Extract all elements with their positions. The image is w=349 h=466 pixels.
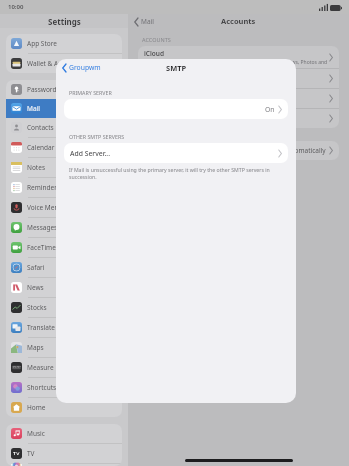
staticText: OTHER SMTP SERVERS <box>69 133 125 140</box>
staticText: Notes <box>27 163 45 172</box>
staticText: Calendar <box>27 143 55 152</box>
staticText: Accounts <box>221 16 256 26</box>
button[interactable] <box>138 109 339 128</box>
button[interactable]: Music <box>6 424 122 443</box>
button[interactable]: Add Server... <box>64 143 288 163</box>
button[interactable]: Automatically <box>138 141 339 160</box>
staticText: Safari <box>27 263 45 272</box>
staticText: Automatically <box>284 146 326 155</box>
button[interactable]: Calendar <box>6 138 122 157</box>
button[interactable]: Translate <box>6 318 122 337</box>
staticText: Mail <box>141 17 154 26</box>
staticText: Voice Memos <box>27 203 68 212</box>
button[interactable]: News <box>6 278 122 297</box>
button[interactable]: On <box>64 99 288 119</box>
button[interactable]: Mail <box>134 17 154 26</box>
button[interactable]: Voice Memos <box>6 198 122 217</box>
button[interactable]: TV <box>6 444 122 463</box>
button[interactable]: Stocks <box>6 298 122 317</box>
button[interactable]: Notes <box>6 158 122 177</box>
staticText: On <box>265 105 275 114</box>
staticText: Shortcuts <box>27 383 57 392</box>
staticText: Home <box>27 403 46 412</box>
button[interactable] <box>138 69 339 88</box>
staticText: Passwords <box>27 85 60 94</box>
button[interactable]: FaceTime <box>6 238 122 257</box>
staticText: Groupwm <box>69 63 101 72</box>
staticText: iCloud Drive, Contacts, Calendars, Safar… <box>144 59 329 66</box>
button[interactable]: Wallet & Apple Pay <box>6 54 122 73</box>
button[interactable]: Safari <box>6 258 122 277</box>
staticText: iCloud <box>144 49 165 58</box>
button[interactable]: App Store <box>6 34 122 53</box>
staticText: News <box>27 283 44 292</box>
button[interactable]: Mail <box>6 99 122 118</box>
button[interactable]: Home <box>6 398 122 417</box>
staticText: Translate <box>27 323 55 332</box>
staticText: Add Server... <box>70 149 110 158</box>
staticText: Messages <box>27 223 58 232</box>
staticText: TV <box>27 449 35 458</box>
staticText: Contacts <box>27 123 54 132</box>
button[interactable]: Passwords <box>6 80 122 99</box>
staticText: PRIMARY SERVER <box>69 89 112 96</box>
staticText: If Mail is unsuccessful using the primar… <box>69 166 283 180</box>
button[interactable]: Measure <box>6 358 122 377</box>
staticText: App Store <box>27 39 57 48</box>
staticText: Reminders <box>27 183 60 192</box>
staticText: SMTP <box>166 63 187 73</box>
staticText: ACCOUNTS <box>142 36 171 43</box>
button[interactable]: Contacts <box>6 118 122 137</box>
staticText: 10:00 <box>8 3 24 11</box>
staticText: Wallet & Apple Pay <box>27 59 85 68</box>
staticText: Music <box>27 429 45 438</box>
button[interactable]: Maps <box>6 338 122 357</box>
button[interactable]: Photos <box>6 464 122 466</box>
staticText: Measure <box>27 363 54 372</box>
staticText: Maps <box>27 343 44 352</box>
staticText: FaceTime <box>27 243 56 252</box>
staticText: Mail <box>27 104 40 113</box>
button[interactable]: Reminders <box>6 178 122 197</box>
button[interactable]: Groupwm <box>62 63 101 72</box>
button[interactable]: Shortcuts <box>6 378 122 397</box>
button[interactable]: Messages <box>6 218 122 237</box>
button[interactable]: iCloud <box>138 46 339 68</box>
staticText: Settings <box>48 16 81 27</box>
staticText: Stocks <box>27 303 47 312</box>
button[interactable] <box>138 89 339 108</box>
